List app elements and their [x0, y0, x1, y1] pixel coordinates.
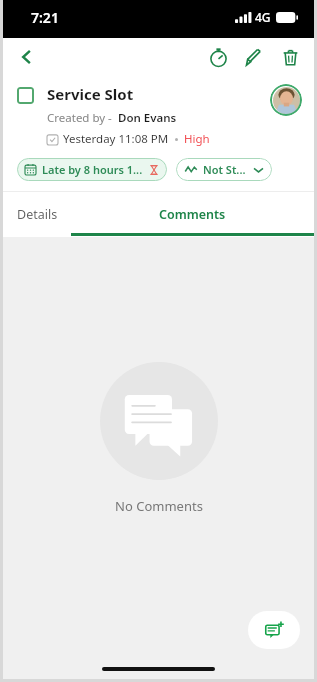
staticText: Created by -	[47, 110, 118, 126]
staticText: Yesterday 11:08 PM	[63, 131, 169, 147]
staticText: Comments	[159, 206, 226, 223]
button[interactable]: Add comment	[248, 611, 300, 649]
staticText: 4G	[255, 9, 271, 25]
staticText: High	[184, 131, 210, 147]
button[interactable]: Timer	[200, 39, 236, 75]
button[interactable]: Back	[9, 39, 45, 75]
button[interactable]: Edit	[236, 39, 272, 75]
button[interactable]: Delete	[272, 39, 308, 75]
button[interactable]: Assignee avatar	[270, 84, 302, 116]
staticText: Not St...	[203, 162, 246, 177]
staticText: 7:21	[31, 8, 59, 27]
button[interactable]: Complete task	[17, 87, 34, 104]
button[interactable]: Comments	[58, 192, 314, 237]
button[interactable]: Late by 8 hours 1...	[17, 158, 167, 181]
button[interactable]: Not St...	[176, 158, 272, 181]
staticText: Don Evans	[118, 110, 177, 126]
staticText: Service Slot	[47, 84, 134, 104]
staticText: No Comments	[115, 497, 203, 515]
staticText: Details	[17, 206, 58, 223]
staticText: Late by 8 hours 1...	[42, 162, 143, 177]
button[interactable]: Details	[3, 192, 58, 237]
